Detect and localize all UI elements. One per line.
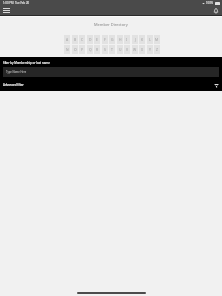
staticText: Y (149, 47, 151, 52)
staticText: E (96, 37, 98, 42)
staticText: L (149, 37, 151, 42)
button[interactable]: J (132, 35, 138, 44)
button[interactable]: D (87, 35, 93, 44)
button[interactable]: G (109, 35, 115, 44)
button[interactable]: M (154, 35, 160, 44)
button[interactable]: A (64, 35, 70, 44)
button[interactable]: F (102, 35, 108, 44)
button[interactable]: Y (147, 45, 153, 54)
staticText: R (96, 47, 99, 52)
staticText: S (104, 47, 106, 52)
button[interactable]: U (117, 45, 123, 54)
staticText: C (81, 37, 84, 42)
button[interactable]: Z (154, 45, 160, 54)
button[interactable]: K (139, 35, 145, 44)
staticText: P (81, 47, 84, 52)
button[interactable]: Q (87, 45, 93, 54)
button[interactable]: P (79, 45, 85, 54)
staticText: U (119, 47, 122, 52)
button[interactable]: H (117, 35, 123, 44)
staticText: K (141, 37, 144, 42)
staticText: Advanced filter (3, 83, 24, 87)
staticText: 1:00 PM Tue Feb 20 (3, 1, 30, 5)
button[interactable]: C (79, 35, 85, 44)
staticText: B (74, 37, 77, 42)
staticText: F (104, 37, 106, 42)
button[interactable]: B (72, 35, 78, 44)
button[interactable]: Advanced filter (0, 77, 222, 91)
staticText: T (111, 47, 113, 52)
staticText: filter by Membership or last name (3, 61, 50, 65)
button[interactable]: S (102, 45, 108, 54)
staticText: W (133, 47, 137, 52)
button[interactable]: V (124, 45, 130, 54)
staticText: O (74, 47, 77, 52)
staticText: Q (89, 47, 92, 52)
staticText: 100% (206, 1, 214, 5)
button[interactable]: Type Name Here (3, 67, 219, 77)
button[interactable]: L (147, 35, 153, 44)
staticText: Type Name Here (6, 70, 27, 74)
staticText: V (126, 47, 129, 52)
staticText: M (155, 37, 159, 42)
staticText: G (111, 37, 114, 42)
staticText: I (126, 37, 128, 42)
staticText: Member Directory (94, 22, 128, 27)
staticText: A (66, 37, 69, 42)
staticText: Z (156, 47, 158, 52)
button[interactable]: O (72, 45, 78, 54)
staticText: J (135, 37, 136, 42)
button[interactable]: Open navigation menu (1, 5, 12, 15)
staticText: H (119, 37, 122, 42)
button[interactable]: Notifications (211, 6, 220, 15)
staticText: N (66, 47, 69, 52)
button[interactable]: E (94, 35, 100, 44)
staticText: D (89, 37, 92, 42)
button[interactable]: W (132, 45, 138, 54)
button[interactable]: R (94, 45, 100, 54)
button[interactable]: T (109, 45, 115, 54)
button[interactable]: X (139, 45, 145, 54)
button[interactable]: N (64, 45, 70, 54)
button[interactable]: I (124, 35, 130, 44)
staticText: X (141, 47, 143, 52)
